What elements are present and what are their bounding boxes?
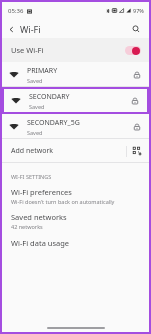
staticText: Wi-Fi data usage	[11, 238, 70, 248]
button[interactable]: Back	[2, 23, 45, 35]
button[interactable]: Wi-Fi data usage	[2, 233, 149, 253]
button[interactable]: Add network	[2, 139, 149, 163]
staticText: Use Wi-Fi	[11, 45, 44, 55]
staticText: Saved networks	[11, 212, 67, 222]
button[interactable]: PRIMARY	[2, 62, 149, 87]
staticText: 05:36	[8, 7, 24, 15]
staticText: Add network	[11, 146, 54, 156]
button[interactable]: SECONDARY	[4, 89, 147, 112]
staticText: Saved	[27, 77, 43, 84]
staticText: Saved	[27, 129, 43, 136]
button[interactable]: Search	[129, 22, 143, 36]
button[interactable]: Scan QR code to add network	[131, 145, 143, 157]
staticText: Saved	[29, 103, 45, 110]
staticText: Wi-Fi doesn't turn back on automatically	[11, 198, 115, 205]
staticText: SECONDARY_5G	[27, 118, 80, 128]
staticText: Wi-Fi preferences	[11, 187, 72, 197]
button[interactable]: Saved networks	[2, 208, 149, 233]
button[interactable]: Use Wi-Fi	[2, 38, 149, 62]
button[interactable]: SECONDARY_5G	[2, 114, 149, 139]
staticText: Wi-Fi	[20, 23, 41, 35]
staticText: 97%	[133, 7, 144, 14]
staticText: PRIMARY	[27, 66, 58, 76]
staticText: WI-FI SETTINGS	[11, 173, 52, 180]
staticText: 42 networks	[11, 223, 43, 230]
button[interactable]: Wi-Fi preferences	[2, 183, 149, 208]
staticText: SECONDARY	[29, 92, 70, 102]
